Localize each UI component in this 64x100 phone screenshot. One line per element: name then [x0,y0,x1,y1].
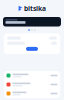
staticText: bitsika [24,4,46,13]
